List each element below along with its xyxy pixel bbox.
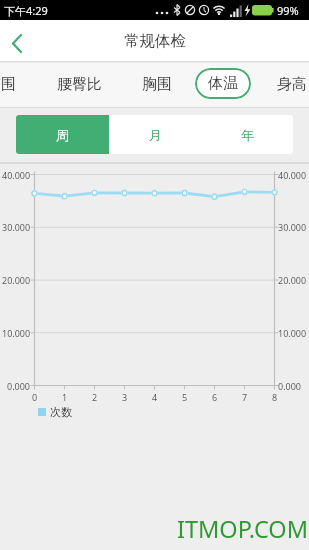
- button[interactable]: 体温: [195, 68, 251, 99]
- staticText: 5: [182, 391, 188, 403]
- staticText: 0.000: [278, 380, 302, 392]
- staticText: 次数: [50, 405, 72, 419]
- staticText: 年: [241, 127, 254, 143]
- staticText: 30.000: [2, 221, 31, 233]
- button[interactable]: 胸围: [142, 75, 172, 94]
- staticText: 40.000: [2, 169, 31, 181]
- staticText: 下午4:29: [4, 3, 48, 18]
- staticText: 20.000: [2, 274, 31, 286]
- button[interactable]: 周: [16, 115, 109, 154]
- staticText: 4: [152, 391, 158, 403]
- staticText: 周: [56, 127, 69, 143]
- staticText: 99%: [277, 3, 299, 18]
- staticText: 0: [32, 391, 38, 403]
- staticText: 3: [122, 391, 128, 403]
- staticText: 40.000: [278, 169, 307, 181]
- button[interactable]: 年: [201, 115, 293, 154]
- staticText: 20.000: [278, 274, 307, 286]
- button[interactable]: 腰臀比: [57, 75, 102, 94]
- button[interactable]: [0, 20, 42, 62]
- staticText: 7: [242, 391, 248, 403]
- staticText: 体温: [208, 74, 238, 93]
- button[interactable]: 月: [109, 115, 201, 154]
- button[interactable]: 身高: [277, 75, 307, 94]
- staticText: 10.000: [278, 327, 307, 339]
- staticText: 常规体检: [124, 31, 186, 51]
- staticText: ITMOP.COM: [177, 513, 309, 545]
- staticText: 10.000: [2, 327, 31, 339]
- staticText: 0.000: [7, 380, 31, 392]
- staticText: 8: [272, 391, 278, 403]
- staticText: 月: [149, 127, 162, 143]
- staticText: 2: [92, 391, 98, 403]
- staticText: 6: [212, 391, 218, 403]
- staticText: 1: [62, 391, 68, 403]
- staticText: 30.000: [278, 221, 307, 233]
- button[interactable]: 臀围: [0, 75, 16, 94]
